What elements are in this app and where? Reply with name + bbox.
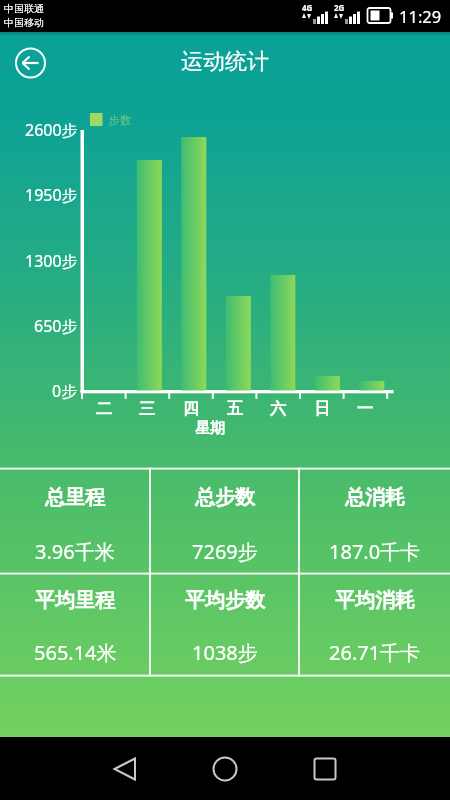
staticText: 总消耗 <box>345 485 405 510</box>
button[interactable] <box>301 745 349 793</box>
button[interactable] <box>1 469 149 573</box>
staticText: 总里程 <box>45 485 105 510</box>
button[interactable] <box>101 745 149 793</box>
button[interactable] <box>151 574 299 674</box>
staticText: 26.71千卡 <box>329 639 421 666</box>
button[interactable] <box>8 40 54 86</box>
staticText: 0步 <box>52 380 78 402</box>
staticText: 平均消耗 <box>335 588 415 613</box>
staticText: 四 <box>183 399 199 419</box>
staticText: 日 <box>314 399 330 419</box>
staticText: 1300步 <box>25 250 78 272</box>
button[interactable] <box>1 574 149 674</box>
staticText: 五 <box>227 399 243 419</box>
staticText: 4G <box>302 2 313 12</box>
staticText: 1038步 <box>192 639 258 666</box>
button[interactable] <box>201 745 249 793</box>
staticText: 总步数 <box>195 485 255 510</box>
staticText: 650步 <box>34 315 78 337</box>
staticText: 运动统计 <box>181 48 269 76</box>
staticText: 2G <box>334 2 345 12</box>
button[interactable] <box>151 469 299 573</box>
staticText: 2600步 <box>25 119 78 141</box>
staticText: 二 <box>96 399 112 419</box>
staticText: 7269步 <box>192 538 258 565</box>
staticText: 三 <box>139 399 155 419</box>
staticText: 六 <box>270 399 286 419</box>
staticText: 187.0千卡 <box>329 538 421 565</box>
staticText: 1950步 <box>25 184 78 206</box>
staticText: 中国移动 <box>4 16 44 29</box>
staticText: 平均里程 <box>35 588 115 613</box>
staticText: 一 <box>357 399 373 419</box>
staticText: 步数 <box>109 113 131 127</box>
staticText: 中国联通 <box>4 2 44 15</box>
staticText: 11:29 <box>399 5 442 27</box>
button[interactable] <box>301 469 449 573</box>
button[interactable] <box>301 574 449 674</box>
staticText: 平均步数 <box>185 588 265 613</box>
staticText: 星期 <box>195 419 225 438</box>
staticText: 565.14米 <box>34 639 117 666</box>
staticText: 3.96千米 <box>35 538 115 565</box>
